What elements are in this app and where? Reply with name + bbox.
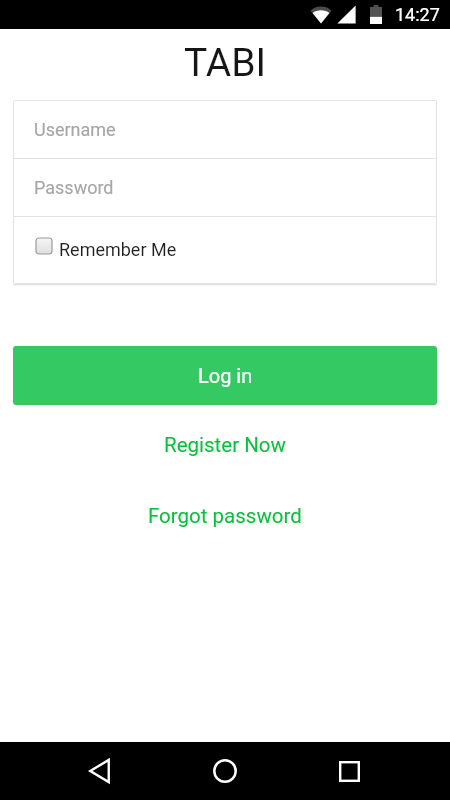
- staticText: Forgot password: [148, 504, 302, 528]
- staticText: TABI: [184, 40, 267, 86]
- button[interactable]: Forgot password: [0, 496, 450, 536]
- button[interactable]: Password: [13, 159, 437, 216]
- staticText: Log in: [198, 364, 253, 387]
- button[interactable]: Back: [0, 742, 162, 800]
- staticText: Password: [34, 177, 114, 198]
- button[interactable]: Log in: [13, 346, 437, 405]
- staticText: Register Now: [164, 433, 286, 457]
- button[interactable]: Recent apps: [287, 742, 450, 800]
- button[interactable]: Register Now: [0, 425, 450, 465]
- button[interactable]: Username: [13, 100, 437, 158]
- staticText: Username: [34, 119, 116, 140]
- staticText: 14:27: [395, 4, 440, 25]
- button[interactable]: Remember Me: [13, 217, 437, 283]
- staticText: Remember Me: [59, 239, 177, 260]
- button[interactable]: Home: [162, 742, 287, 800]
